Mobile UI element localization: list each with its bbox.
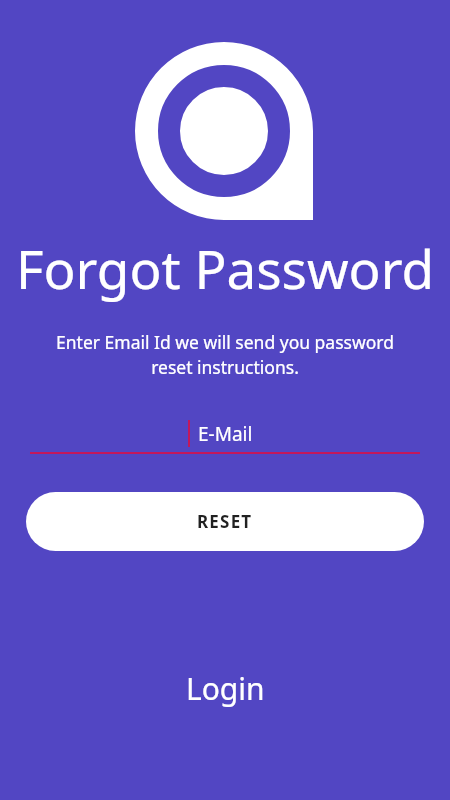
staticText: Forgot Password (0, 232, 450, 304)
staticText: Login (186, 668, 265, 709)
staticText: E-Mail (198, 421, 253, 447)
button[interactable]: RESET (26, 492, 424, 551)
button[interactable]: E-Mail (30, 412, 420, 454)
button[interactable]: Login (0, 663, 450, 713)
staticText: Enter Email Id we will send you password… (14, 330, 436, 380)
staticText: RESET (197, 510, 253, 533)
